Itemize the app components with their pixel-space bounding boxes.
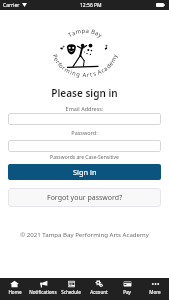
button[interactable]: Notifications [29,278,57,300]
button[interactable] [8,113,161,125]
button[interactable]: Forgot your password? [8,188,161,207]
button[interactable] [8,140,161,152]
staticText: © 2021 Tampa Bay Performing Arts Academy [0,230,169,238]
staticText: Email Address: [0,105,169,112]
staticText: Forgot your password? [47,193,123,203]
button[interactable]: Account [85,278,113,300]
staticText: Sign in [73,167,97,177]
button[interactable]: Schedule [57,278,85,300]
button[interactable]: More [141,278,169,300]
staticText: Passwords are Case-Sensitive [0,154,169,161]
staticText: Password: [0,129,169,136]
staticText: 12:56 PM [80,2,102,9]
button[interactable]: Pay [113,278,141,300]
staticText: More [149,289,161,295]
button[interactable]: Home [0,278,29,300]
staticText: Pay [123,289,131,295]
staticText: Schedule [61,289,81,295]
staticText: Account [90,289,108,295]
staticText: Home [8,289,22,295]
staticText: Carrier [3,2,20,9]
staticText: Please sign in [0,86,169,100]
button[interactable]: Sign in [8,164,161,180]
staticText: Notifications [29,289,57,295]
